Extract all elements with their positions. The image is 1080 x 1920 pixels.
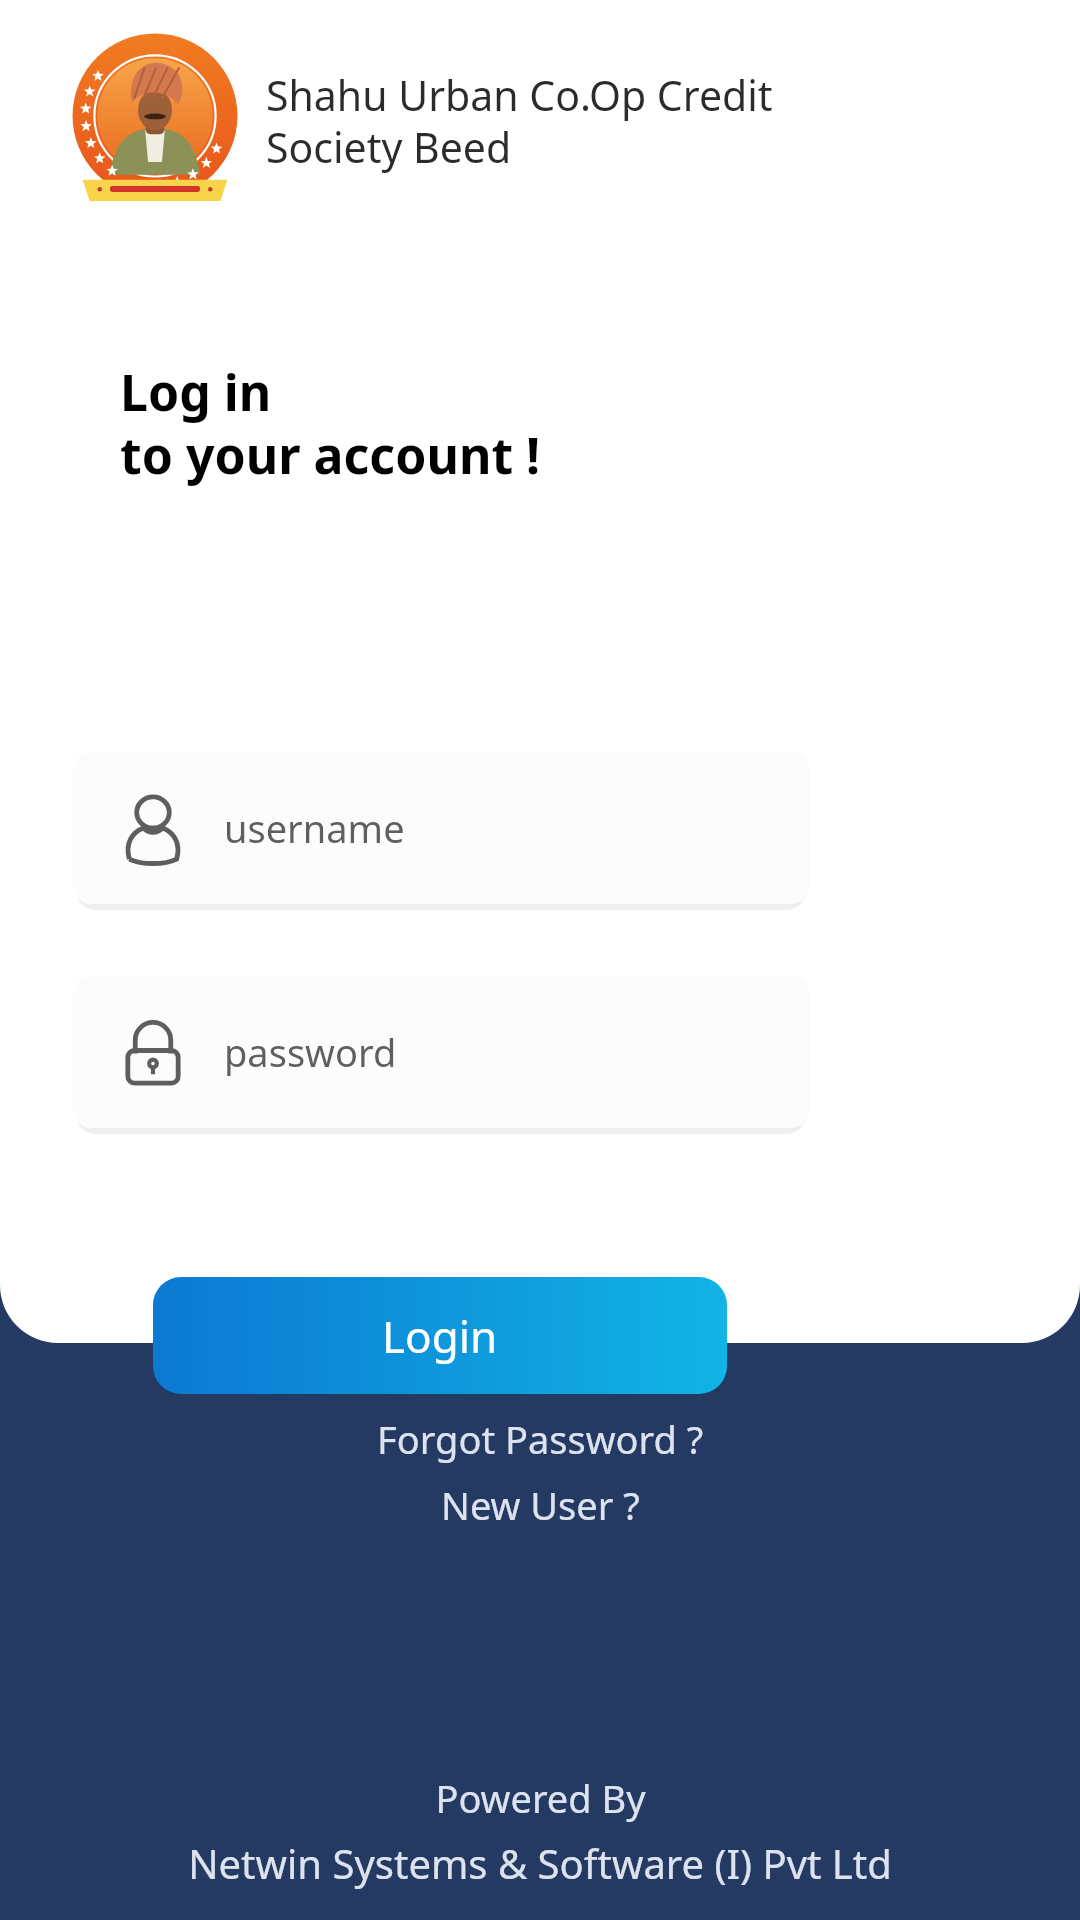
staticText: Login	[382, 1306, 498, 1366]
button[interactable]: Login	[153, 1277, 727, 1394]
staticText: username	[224, 802, 405, 854]
staticText: Shahu Urban Co.Op Credit Society Beed	[266, 67, 773, 175]
staticText: Netwin Systems & Software (I) Pvt Ltd	[188, 1836, 892, 1890]
staticText: New User ?	[441, 1479, 640, 1531]
staticText: Log in to your account !	[120, 358, 541, 488]
button[interactable]: Forgot Password ?	[363, 1411, 718, 1467]
staticText: Powered By	[435, 1772, 646, 1824]
button[interactable]: New User ?	[427, 1477, 654, 1533]
button[interactable]: username	[72, 752, 810, 904]
button[interactable]: password	[72, 976, 810, 1128]
staticText: Forgot Password ?	[377, 1413, 704, 1465]
staticText: password	[224, 1026, 397, 1078]
